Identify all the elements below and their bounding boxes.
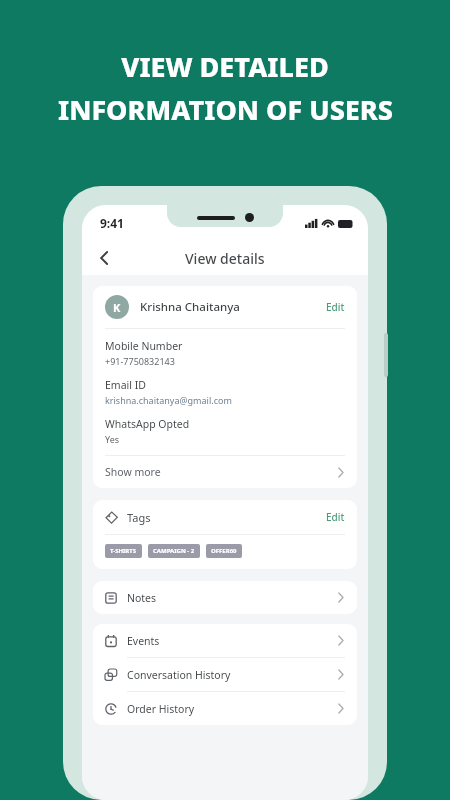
staticText: krishna.chaitanya@gmail.com [105,394,232,406]
staticText: INFORMATION OF USERS [58,91,393,128]
staticText: Notes [127,591,157,605]
button[interactable]: CAMPAIGN - 2 [148,544,200,558]
staticText: Edit [326,300,345,314]
staticText: WhatsApp Opted [105,417,190,431]
staticText: Tags [127,510,151,525]
button[interactable]: Show more [93,456,357,488]
button[interactable]: Notes [93,581,357,614]
staticText: CAMPAIGN - 2 [153,547,195,555]
staticText: Show more [105,465,161,479]
button[interactable]: Events [93,624,357,657]
staticText: OFFER60 [211,547,237,555]
staticText: View details [185,249,265,268]
staticText: Mobile Number [105,339,183,353]
staticText: Edit [326,510,345,524]
button[interactable]: K [93,286,357,328]
button[interactable]: Conversation History [93,658,357,691]
staticText: VIEW DETAILED [121,48,329,85]
button[interactable]: OFFER60 [206,544,242,558]
button[interactable]: Tags [93,500,357,534]
staticText: Conversation History [127,668,231,682]
staticText: T-SHIRTS [110,547,137,555]
staticText: Yes [105,433,120,445]
staticText: K [113,300,121,315]
staticText: +91-7750832143 [105,355,175,367]
staticText: Events [127,634,160,648]
button[interactable]: T-SHIRTS [105,544,142,558]
button[interactable]: Back [90,243,120,273]
staticText: Email ID [105,378,146,392]
staticText: Krishna Chaitanya [140,299,240,315]
button[interactable]: Order History [93,692,357,725]
staticText: Order History [127,702,195,716]
staticText: 9:41 [100,215,124,231]
